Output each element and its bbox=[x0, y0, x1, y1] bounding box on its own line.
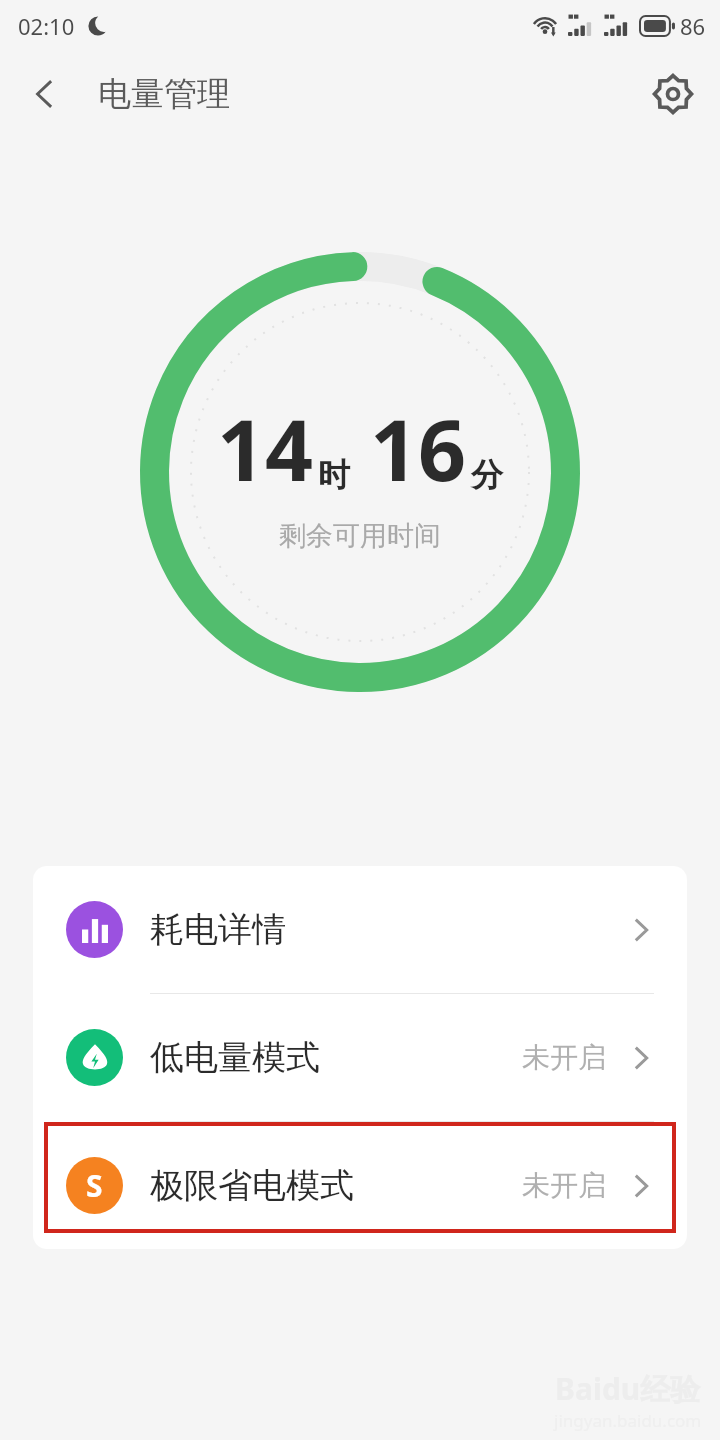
staticText: Baidu经验 bbox=[555, 1368, 701, 1409]
staticText: 极限省电模式 bbox=[150, 1164, 354, 1207]
staticText: S bbox=[86, 1165, 103, 1206]
staticText: 02:10 bbox=[18, 11, 75, 41]
button[interactable]: 低电量模式 bbox=[33, 994, 687, 1121]
button[interactable]: Settings bbox=[642, 63, 704, 125]
button[interactable]: Back bbox=[14, 63, 76, 125]
staticText: 耗电详情 bbox=[150, 908, 286, 951]
button[interactable]: S bbox=[33, 1122, 687, 1249]
staticText: 86 bbox=[680, 11, 706, 41]
staticText: 时 bbox=[318, 455, 350, 495]
staticText: 未开启 bbox=[522, 1168, 606, 1203]
staticText: 16 bbox=[370, 391, 467, 505]
staticText: 14 bbox=[217, 391, 314, 505]
button[interactable]: 耗电详情 bbox=[33, 866, 687, 993]
staticText: 分 bbox=[471, 455, 503, 495]
staticText: 电量管理 bbox=[98, 73, 230, 115]
staticText: 未开启 bbox=[522, 1040, 606, 1075]
staticText: 剩余可用时间 bbox=[279, 519, 441, 553]
staticText: 低电量模式 bbox=[150, 1036, 320, 1079]
